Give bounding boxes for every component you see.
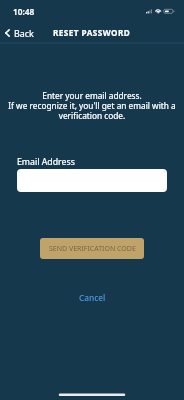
button[interactable]: Email Address input <box>17 169 167 192</box>
staticText: Enter your email address. If we recogniz… <box>0 90 184 122</box>
staticText: RESET PASSWORD <box>53 27 131 38</box>
button[interactable]: Cancel <box>67 286 118 309</box>
staticText: SEND VERIFICATION CODE <box>49 244 136 254</box>
staticText: Email Address <box>17 156 75 168</box>
staticText: Back <box>14 27 34 39</box>
staticText: 10:48 <box>13 6 35 17</box>
staticText: Cancel <box>79 292 106 303</box>
button[interactable]: SEND VERIFICATION CODE <box>40 238 144 259</box>
button[interactable]: Back <box>0 24 40 42</box>
